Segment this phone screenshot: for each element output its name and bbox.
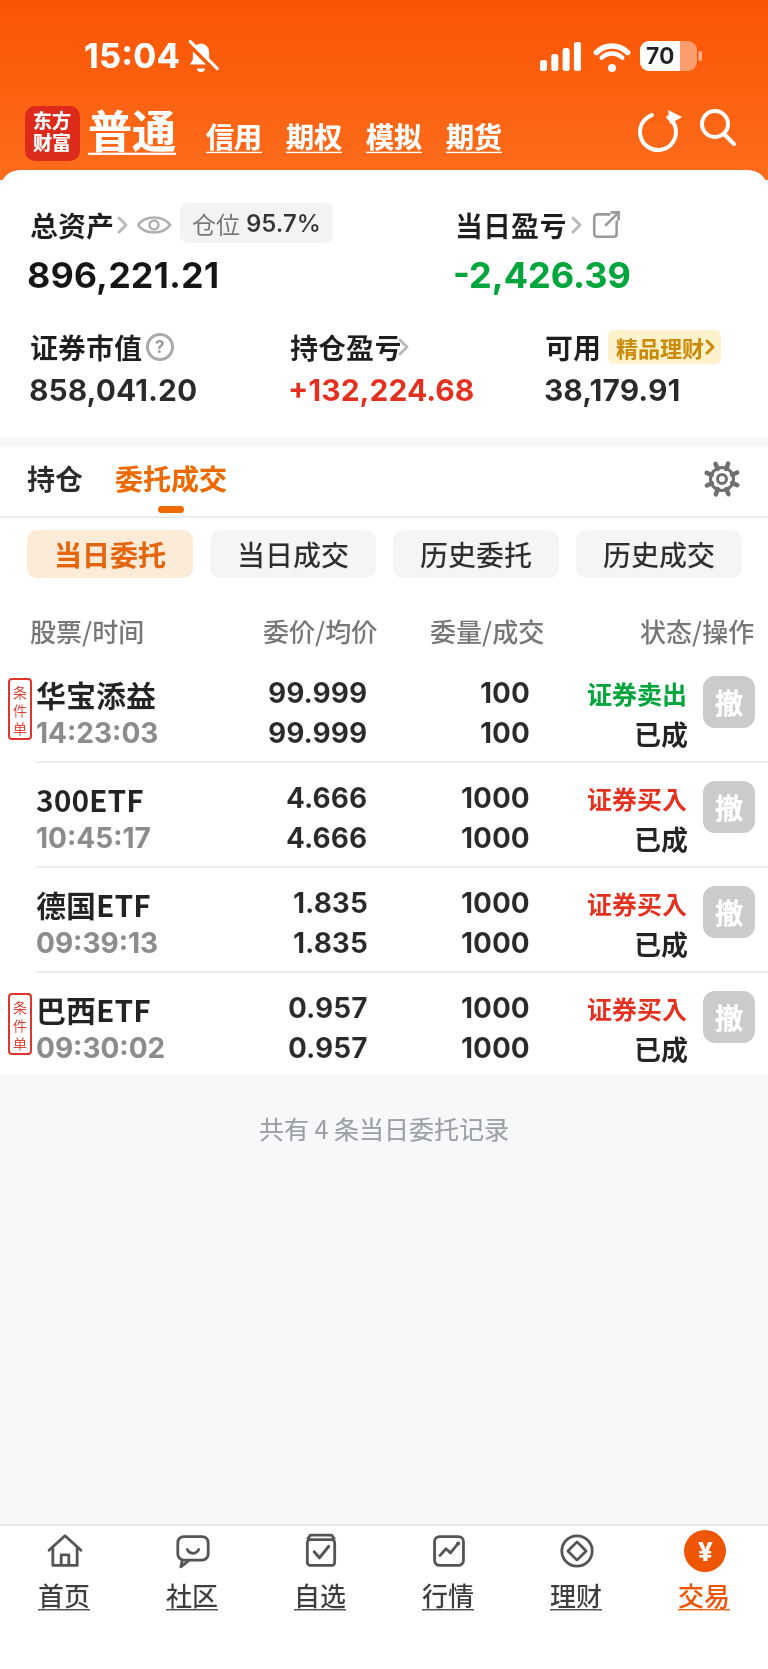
staticText: 条: [13, 997, 27, 1015]
button[interactable]: 行情: [393, 1530, 503, 1630]
button[interactable]: 精品理财: [608, 330, 721, 364]
button[interactable]: ¥: [649, 1530, 759, 1630]
staticText: 理财: [550, 1576, 603, 1614]
staticText: 已成: [634, 924, 688, 963]
button[interactable]: [636, 110, 680, 154]
staticText: 38,179.91: [544, 372, 681, 408]
staticText: 1000: [461, 886, 530, 920]
staticText: 858,041.20: [29, 372, 198, 408]
staticText: 普通: [88, 97, 176, 159]
staticText: 1000: [461, 781, 530, 815]
staticText: 撤: [715, 682, 744, 723]
staticText: ¥: [698, 1536, 713, 1567]
staticText: 4.666: [286, 821, 368, 855]
staticText: 信用: [206, 116, 263, 157]
staticText: 当日盈亏: [455, 205, 568, 246]
staticText: 委托成交: [115, 458, 228, 499]
staticText: 条: [13, 682, 27, 700]
staticText: 巴西ETF: [36, 987, 151, 1030]
staticText: 0.957: [288, 1031, 368, 1065]
staticText: 1000: [461, 991, 530, 1025]
button[interactable]: 期货: [446, 112, 503, 160]
staticText: 99.999: [268, 676, 368, 710]
button[interactable]: 撤: [703, 991, 755, 1043]
staticText: 单: [13, 718, 27, 736]
button[interactable]: 当日成交: [210, 530, 376, 578]
staticText: 期权: [286, 116, 343, 157]
staticText: 撤: [715, 892, 744, 933]
staticText: 东方: [33, 106, 72, 134]
staticText: 896,221.21: [27, 253, 220, 297]
button[interactable]: 自选: [265, 1530, 375, 1630]
staticText: 交易: [678, 1576, 731, 1614]
button[interactable]: [698, 108, 738, 148]
staticText: 已成: [634, 714, 688, 753]
staticText: 股票/时间: [30, 612, 145, 648]
staticText: 模拟: [366, 116, 423, 157]
button[interactable]: 持仓: [27, 457, 84, 499]
button[interactable]: 当日委托: [27, 530, 193, 578]
button[interactable]: 委托成交: [115, 457, 228, 499]
button[interactable]: 首页: [9, 1530, 119, 1630]
staticText: 总资产: [30, 205, 115, 246]
staticText: 当日成交: [237, 534, 350, 575]
staticText: 撤: [715, 787, 744, 828]
staticText: 100: [480, 716, 530, 750]
staticText: 14:23:03: [36, 716, 159, 750]
staticText: 件: [13, 700, 27, 718]
staticText: 精品理财: [616, 331, 705, 363]
staticText: 15:04: [84, 35, 181, 76]
staticText: 共有 4 条当日委托记录: [259, 1110, 510, 1146]
staticText: 首页: [38, 1576, 91, 1614]
staticText: +132,224.68: [288, 372, 475, 408]
button[interactable]: 信用: [206, 112, 263, 160]
button[interactable]: 社区: [137, 1530, 247, 1630]
staticText: 证券市值: [30, 327, 143, 367]
staticText: ?: [155, 337, 165, 358]
button[interactable]: 撤: [703, 886, 755, 938]
staticText: 100: [480, 676, 530, 710]
staticText: 4.666: [286, 781, 368, 815]
button[interactable]: 模拟: [366, 112, 423, 160]
staticText: 10:45:17: [36, 821, 151, 855]
staticText: 1000: [461, 821, 530, 855]
staticText: 持仓盈亏: [290, 327, 403, 367]
button[interactable]: 历史委托: [393, 530, 559, 578]
staticText: 已成: [634, 1029, 688, 1068]
staticText: 证券买入: [587, 885, 688, 921]
button[interactable]: 普通: [88, 97, 176, 159]
staticText: 1000: [461, 926, 530, 960]
staticText: 期货: [446, 116, 503, 157]
staticText: 撤: [715, 997, 744, 1038]
staticText: 证券卖出: [587, 675, 688, 711]
button[interactable]: 东方: [25, 106, 80, 161]
button[interactable]: 理财: [521, 1530, 631, 1630]
staticText: 300ETF: [36, 777, 144, 820]
button[interactable]: 期权: [286, 112, 343, 160]
staticText: 证券买入: [587, 990, 688, 1026]
staticText: 09:39:13: [36, 926, 159, 960]
button[interactable]: 撤: [703, 676, 755, 728]
staticText: 持仓: [27, 458, 84, 499]
staticText: 委价/均价: [263, 612, 378, 648]
staticText: 历史委托: [420, 534, 533, 575]
button[interactable]: 撤: [703, 781, 755, 833]
staticText: 证券买入: [587, 780, 688, 816]
staticText: 09:30:02: [36, 1031, 166, 1065]
staticText: -2,426.39: [453, 253, 631, 297]
staticText: 件: [13, 1015, 27, 1033]
staticText: 行情: [422, 1576, 475, 1614]
staticText: 0.957: [288, 991, 368, 1025]
staticText: 社区: [166, 1576, 219, 1614]
button[interactable]: 历史成交: [576, 530, 742, 578]
staticText: 95.7%: [246, 209, 321, 238]
button[interactable]: [702, 459, 742, 499]
staticText: 1.835: [293, 886, 368, 920]
staticText: 99.999: [268, 716, 368, 750]
staticText: 单: [13, 1033, 27, 1051]
staticText: 可用: [545, 327, 602, 367]
staticText: 1.835: [293, 926, 368, 960]
staticText: 华宝添益: [36, 672, 156, 715]
staticText: 已成: [634, 819, 688, 858]
staticText: 状态/操作: [640, 612, 755, 648]
